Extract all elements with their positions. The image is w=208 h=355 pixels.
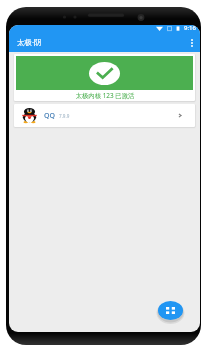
button[interactable]: QQ: [14, 104, 195, 127]
button[interactable]: Apps: [158, 301, 183, 320]
staticText: 太极内核 123 已激活: [75, 91, 135, 100]
staticText: 9:16: [184, 25, 196, 32]
staticText: 7.9.9: [59, 113, 70, 119]
button[interactable]: 太极内核 123 已激活: [14, 54, 195, 101]
button[interactable]: More options: [184, 34, 200, 52]
staticText: QQ: [44, 111, 55, 121]
staticText: 太极·阴: [17, 37, 42, 47]
